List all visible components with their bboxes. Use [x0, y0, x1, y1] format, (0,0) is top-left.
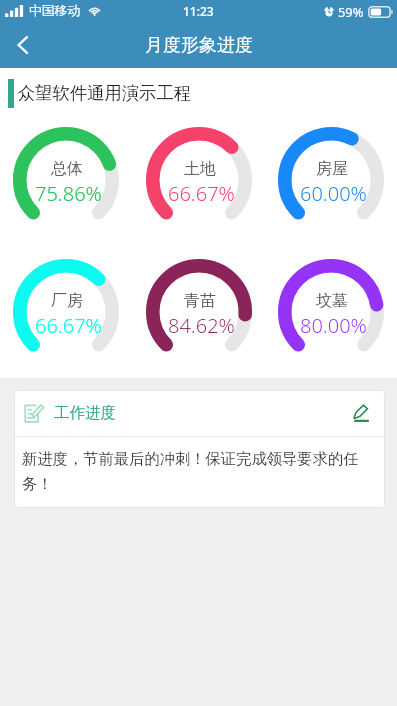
- staticText: 80.00%: [300, 312, 367, 339]
- staticText: 59%: [338, 3, 364, 20]
- staticText: 11:23: [183, 3, 214, 19]
- staticText: 75.86%: [35, 180, 102, 207]
- staticText: 土地: [184, 159, 216, 179]
- staticText: 工作进度: [54, 403, 116, 423]
- staticText: 月度形象进度: [145, 34, 253, 57]
- staticText: 中国移动: [29, 3, 81, 19]
- staticText: 众望软件通用演示工程: [18, 82, 191, 104]
- staticText: 84.62%: [168, 312, 235, 339]
- staticText: 厂房: [51, 291, 83, 311]
- staticText: 坟墓: [316, 291, 348, 311]
- staticText: 青苗: [184, 291, 216, 311]
- staticText: 新进度，节前最后的冲刺！保证完成领导要求的任务！: [22, 449, 377, 494]
- staticText: 总体: [51, 159, 83, 179]
- button[interactable]: Edit: [349, 400, 375, 426]
- staticText: 66.67%: [35, 312, 102, 339]
- staticText: 66.67%: [168, 180, 235, 207]
- staticText: 房屋: [316, 159, 348, 179]
- staticText: 60.00%: [300, 180, 367, 207]
- button[interactable]: Back: [0, 22, 46, 68]
